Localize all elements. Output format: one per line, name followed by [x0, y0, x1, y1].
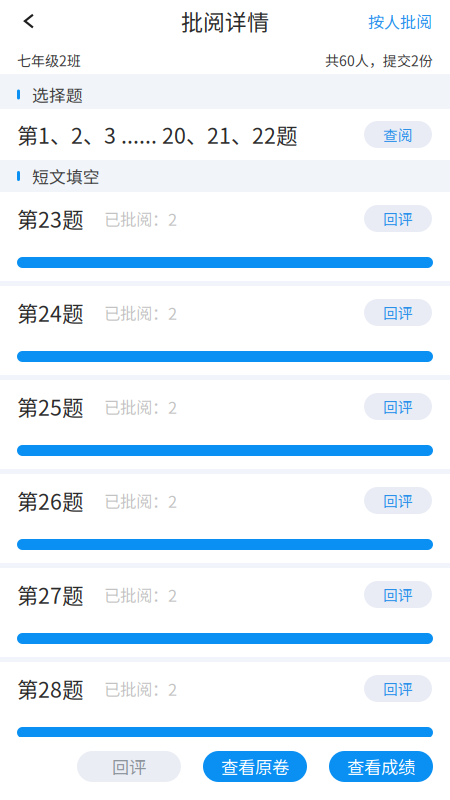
staticText: 第24题 — [17, 297, 83, 328]
button[interactable]: 查看原卷 — [203, 751, 307, 782]
button[interactable]: 回评 — [364, 675, 432, 702]
staticText: 已批阅：2 — [104, 677, 177, 700]
button[interactable]: 回评 — [364, 393, 432, 420]
staticText: 第28题 — [17, 673, 83, 704]
button[interactable]: Back — [0, 0, 58, 42]
button[interactable]: 回评 — [364, 205, 432, 232]
staticText: 按人批阅 — [368, 9, 432, 33]
button[interactable]: 回评 — [77, 751, 181, 782]
button[interactable]: 查看成绩 — [329, 751, 433, 782]
staticText: 查看原卷 — [221, 754, 289, 779]
button[interactable]: 回评 — [364, 487, 432, 514]
staticText: 已批阅：2 — [104, 301, 177, 324]
button[interactable]: 按人批阅 — [368, 0, 450, 42]
staticText: 短文填空 — [32, 164, 100, 188]
staticText: 第27题 — [17, 579, 83, 610]
button[interactable]: 查阅 — [364, 121, 432, 148]
staticText: 查阅 — [383, 124, 413, 145]
staticText: 回评 — [383, 584, 413, 605]
staticText: 查看成绩 — [347, 754, 415, 779]
button[interactable]: 回评 — [364, 299, 432, 326]
staticText: 回评 — [112, 754, 146, 779]
staticText: 回评 — [383, 678, 413, 699]
staticText: 已批阅：2 — [104, 207, 177, 230]
staticText: 已批阅：2 — [104, 583, 177, 606]
staticText: 第1、2、3 ...... 20、21、22题 — [17, 119, 297, 150]
staticText: 第26题 — [17, 485, 83, 516]
staticText: 回评 — [383, 396, 413, 417]
staticText: 选择题 — [32, 82, 83, 106]
staticText: 批阅详情 — [181, 5, 269, 37]
staticText: 七年级2班 — [17, 50, 81, 70]
staticText: 已批阅：2 — [104, 395, 177, 418]
staticText: 已批阅：2 — [104, 489, 177, 512]
staticText: 第25题 — [17, 391, 83, 422]
staticText: 共60人，提交2份 — [325, 50, 433, 70]
staticText: 回评 — [383, 490, 413, 511]
staticText: 回评 — [383, 208, 413, 229]
staticText: 第23题 — [17, 203, 83, 234]
button[interactable]: 回评 — [364, 581, 432, 608]
staticText: 回评 — [383, 302, 413, 323]
